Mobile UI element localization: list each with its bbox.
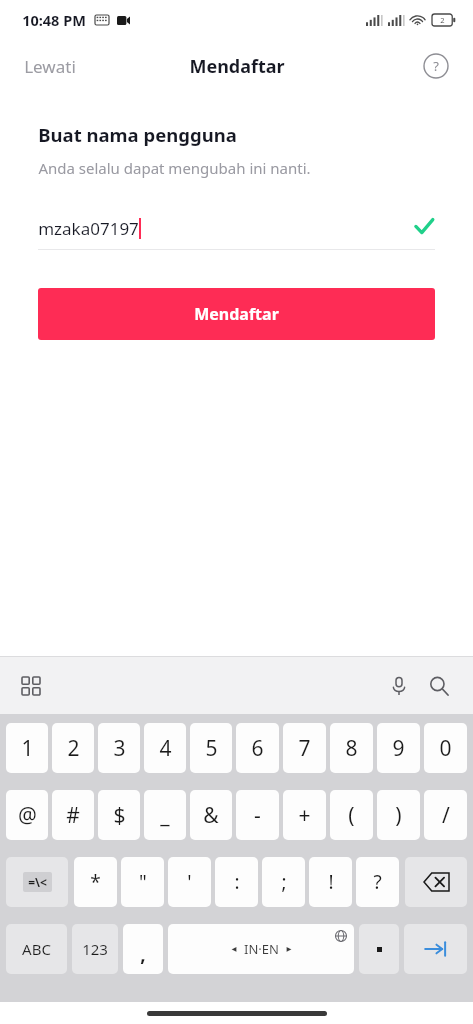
- staticText: @: [18, 801, 37, 830]
- staticText: $: [113, 801, 126, 830]
- staticText: /: [442, 801, 450, 830]
- staticText: &: [203, 801, 219, 830]
- staticText: 5: [205, 734, 218, 763]
- staticText: 1: [21, 734, 34, 763]
- button[interactable]: -: [236, 790, 279, 840]
- button[interactable]: mzaka07197: [38, 207, 435, 249]
- staticText: :: [234, 869, 240, 895]
- staticText: *: [90, 869, 101, 895]
- staticText: 6: [251, 734, 264, 763]
- button[interactable]: (: [330, 790, 373, 840]
- staticText: +: [298, 801, 311, 830]
- button[interactable]: 0: [424, 723, 467, 773]
- staticText: 2: [67, 734, 80, 763]
- staticText: Mendaftar: [194, 303, 279, 325]
- button[interactable]: Keyboard layouts: [18, 673, 44, 699]
- button[interactable]: 7: [283, 723, 326, 773]
- staticText: ': [187, 869, 192, 895]
- button[interactable]: _: [144, 790, 186, 840]
- button[interactable]: 123: [72, 924, 118, 974]
- button[interactable]: +: [283, 790, 326, 840]
- staticText: mzaka07197: [38, 217, 139, 240]
- staticText: IN·EN: [244, 940, 279, 958]
- button[interactable]: Mendaftar: [38, 288, 435, 340]
- staticText: Mendaftar: [189, 54, 285, 79]
- button[interactable]: 9: [377, 723, 420, 773]
- button[interactable]: ': [168, 857, 211, 907]
- button[interactable]: :: [215, 857, 258, 907]
- button[interactable]: @: [6, 790, 48, 840]
- staticText: ?: [433, 57, 439, 75]
- staticText: =\<: [28, 874, 47, 890]
- staticText: 2: [440, 15, 445, 25]
- button[interactable]: &: [190, 790, 232, 840]
- staticText: 8: [345, 734, 358, 763]
- button[interactable]: *: [74, 857, 117, 907]
- button[interactable]: Space: [168, 924, 354, 974]
- button[interactable]: ,: [123, 924, 163, 974]
- staticText: 4: [159, 734, 172, 763]
- staticText: 3: [113, 734, 126, 763]
- button[interactable]: ;: [262, 857, 305, 907]
- button[interactable]: [359, 924, 399, 974]
- button[interactable]: 8: [330, 723, 373, 773]
- staticText: ;: [281, 869, 287, 895]
- button[interactable]: !: [309, 857, 352, 907]
- staticText: 123: [82, 939, 108, 959]
- button[interactable]: Lewati: [0, 47, 92, 86]
- button[interactable]: Help: [423, 53, 449, 79]
- button[interactable]: Voice input: [385, 672, 413, 700]
- button[interactable]: #: [52, 790, 94, 840]
- button[interactable]: 2: [52, 723, 94, 773]
- staticText: ▸: [286, 943, 292, 955]
- button[interactable]: ): [377, 790, 420, 840]
- button[interactable]: 4: [144, 723, 186, 773]
- staticText: Anda selalu dapat mengubah ini nanti.: [38, 158, 311, 178]
- button[interactable]: 1: [6, 723, 48, 773]
- staticText: ": [139, 869, 147, 895]
- staticText: ?: [373, 869, 382, 895]
- staticText: Buat nama pengguna: [38, 122, 237, 147]
- staticText: 0: [439, 734, 452, 763]
- staticText: -: [254, 801, 261, 830]
- staticText: #: [66, 801, 80, 830]
- button[interactable]: ABC: [6, 924, 67, 974]
- staticText: !: [328, 869, 334, 895]
- button[interactable]: 6: [236, 723, 279, 773]
- staticText: 7: [298, 734, 311, 763]
- button[interactable]: ": [121, 857, 164, 907]
- button[interactable]: Enter: [404, 924, 467, 974]
- staticText: ,: [140, 941, 146, 967]
- staticText: Lewati: [24, 55, 76, 78]
- staticText: 10:48 PM: [22, 10, 86, 30]
- button[interactable]: $: [98, 790, 140, 840]
- button[interactable]: /: [424, 790, 467, 840]
- button[interactable]: Backspace: [405, 857, 467, 907]
- button[interactable]: 3: [98, 723, 140, 773]
- staticText: ABC: [22, 939, 51, 959]
- staticText: 9: [392, 734, 405, 763]
- button[interactable]: 5: [190, 723, 232, 773]
- button[interactable]: ?: [356, 857, 399, 907]
- staticText: _: [160, 801, 170, 830]
- staticText: (: [348, 801, 355, 830]
- button[interactable]: =\<: [6, 857, 68, 907]
- staticText: ◂: [231, 943, 237, 955]
- button[interactable]: Search: [425, 672, 453, 700]
- staticText: ): [395, 801, 402, 830]
